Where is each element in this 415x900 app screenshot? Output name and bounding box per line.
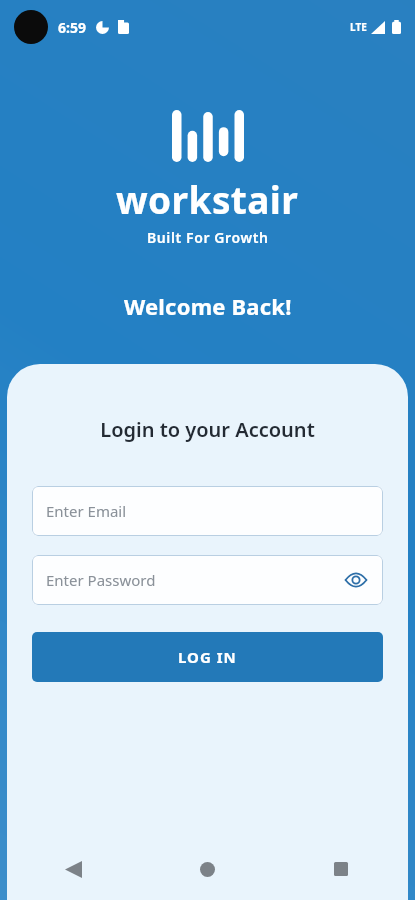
staticText: Enter Password [46, 570, 156, 590]
staticText: Built For Growth [147, 228, 269, 247]
staticText: workstair [116, 174, 299, 224]
button[interactable]: Show password [339, 563, 373, 597]
button[interactable]: Recent apps [274, 838, 408, 900]
button[interactable]: LOG IN [32, 632, 383, 682]
button[interactable]: Back [7, 838, 140, 900]
staticText: LTE [350, 20, 367, 34]
button[interactable]: Home [140, 838, 274, 900]
staticText: Welcome Back! [124, 291, 292, 321]
staticText: LOG IN [178, 647, 237, 667]
button[interactable]: Enter Password [32, 555, 383, 605]
staticText: 6:59 [58, 18, 86, 37]
button[interactable]: Enter Email [32, 486, 383, 536]
staticText: Enter Email [46, 501, 127, 521]
staticText: Login to your Account [100, 416, 315, 443]
